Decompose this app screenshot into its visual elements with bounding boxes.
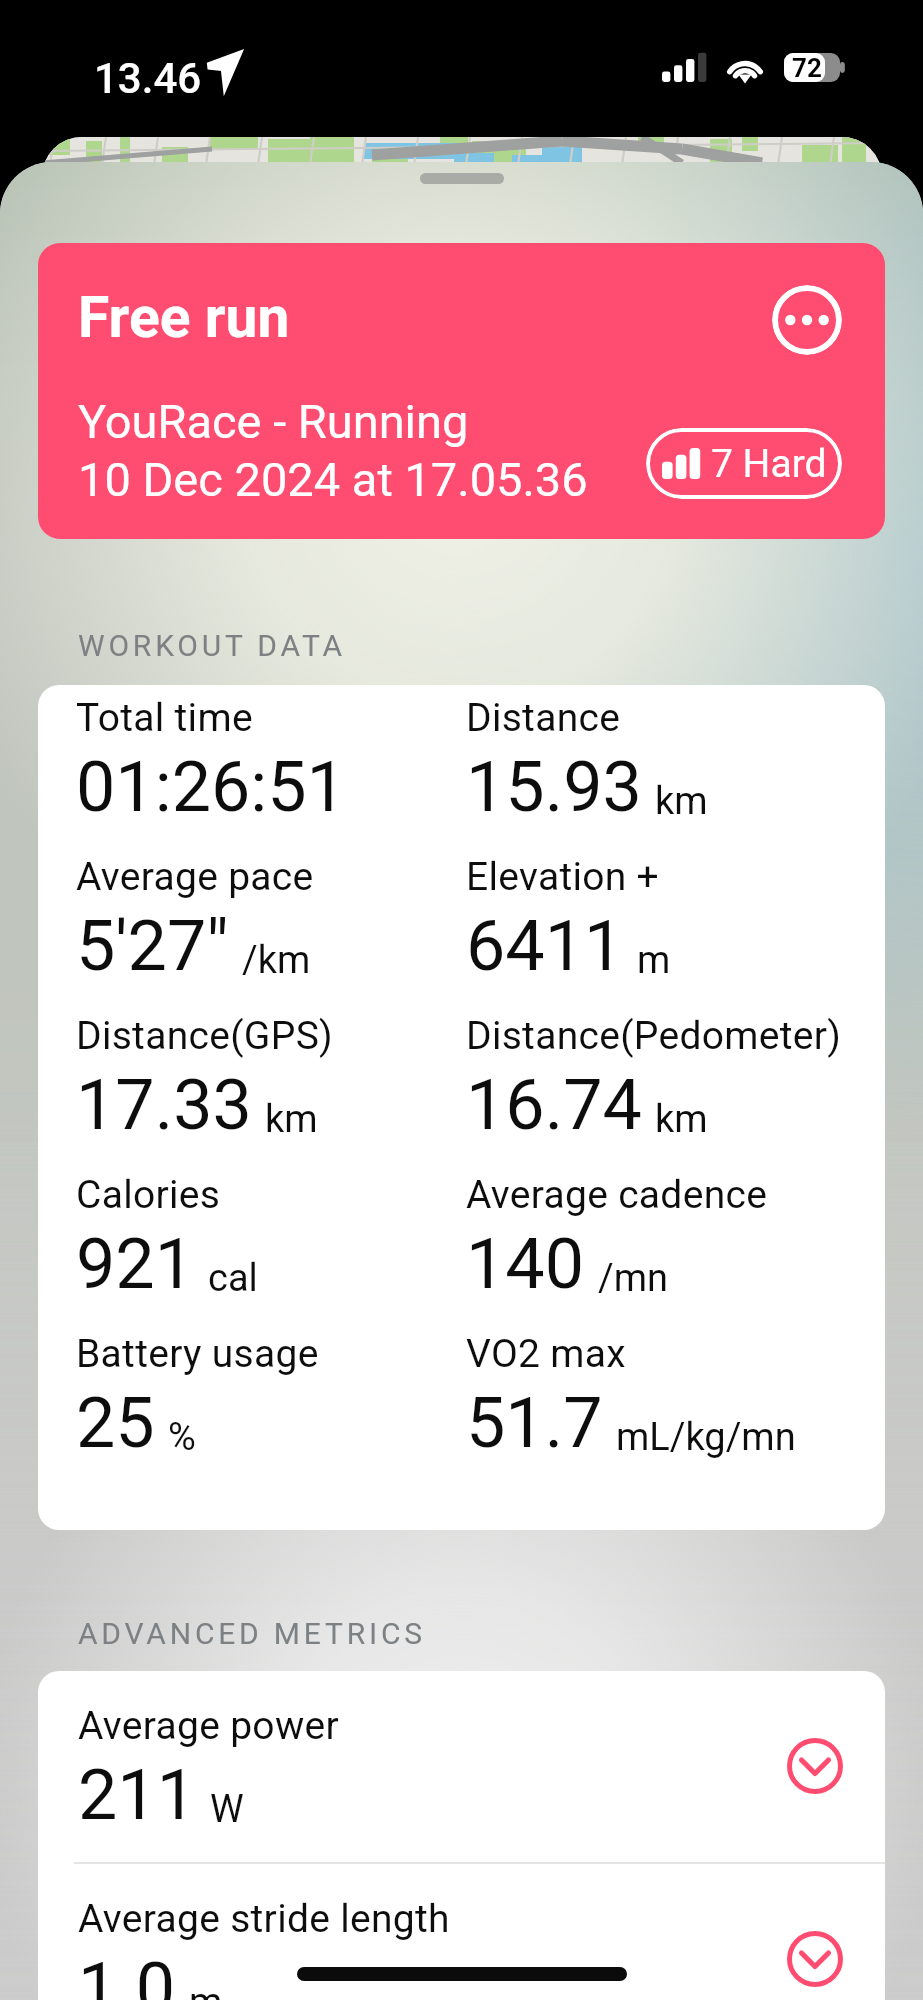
staticText: Total time (76, 695, 253, 741)
button[interactable]: Average power (38, 1671, 885, 1862)
staticText: 16.74 (466, 1064, 642, 1146)
button[interactable]: Expand (787, 1931, 843, 1987)
staticText: km (265, 1097, 318, 1142)
staticText: VO2 max (466, 1331, 626, 1377)
staticText: Average cadence (466, 1172, 768, 1218)
button[interactable]: More options (772, 285, 842, 355)
button[interactable]: Free run (38, 243, 885, 539)
staticText: 10 Dec 2024 at 17.05.36 (78, 452, 588, 507)
staticText: YouRace - Running (78, 394, 469, 449)
staticText: Distance(GPS) (76, 1013, 333, 1059)
staticText: 51.7 (466, 1382, 603, 1464)
button[interactable]: Expand (787, 1738, 843, 1794)
staticText: 5'27" (76, 905, 229, 987)
staticText: 921 (76, 1223, 195, 1305)
staticText: Calories (76, 1172, 221, 1218)
staticText: mL/kg/mn (616, 1415, 796, 1460)
button[interactable]: Average stride length (38, 1864, 885, 2000)
staticText: 6411 (466, 905, 624, 987)
staticText: Battery usage (76, 1331, 319, 1377)
staticText: Free run (78, 284, 290, 351)
staticText: Average power (78, 1703, 339, 1749)
staticText: 211 (78, 1754, 197, 1836)
staticText: Distance(Pedometer) (466, 1013, 842, 1059)
staticText: km (655, 1097, 708, 1142)
staticText: 7 Hard (711, 441, 827, 487)
staticText: % (168, 1415, 196, 1460)
button[interactable]: 7 Hard (646, 428, 842, 499)
staticText: m (189, 1980, 223, 2000)
staticText: Distance (466, 695, 621, 741)
staticText: 13.46 (94, 54, 202, 103)
staticText: 15.93 (466, 746, 642, 828)
staticText: m (637, 938, 671, 983)
staticText: 140 (466, 1223, 585, 1305)
staticText: WORKOUT DATA (78, 628, 346, 663)
staticText: cal (208, 1256, 258, 1301)
staticText: Average stride length (78, 1896, 450, 1942)
staticText: 25 (76, 1382, 155, 1464)
staticText: /km (242, 938, 311, 983)
staticText: ADVANCED METRICS (78, 1616, 426, 1651)
staticText: Elevation + (466, 854, 660, 900)
staticText: /mn (598, 1256, 668, 1301)
staticText: W (210, 1787, 244, 1832)
staticText: 17.33 (76, 1064, 252, 1146)
staticText: 01:26:51 (76, 746, 346, 828)
staticText: 72 (792, 53, 822, 82)
staticText: km (655, 779, 708, 824)
staticText: 1.0 (78, 1947, 176, 2000)
staticText: Average pace (76, 854, 314, 900)
